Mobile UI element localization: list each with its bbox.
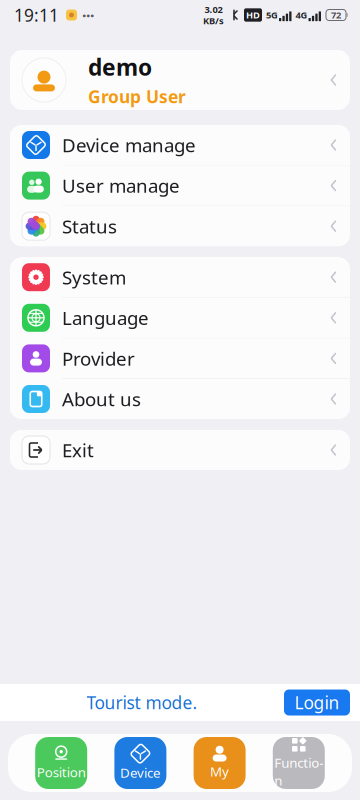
staticText: KB/s xyxy=(203,14,224,27)
staticText: 72 xyxy=(331,9,341,21)
staticText: 4G xyxy=(295,9,307,21)
staticText: About us xyxy=(62,387,141,411)
button[interactable]: Exit xyxy=(10,430,350,470)
staticText: Device manage xyxy=(62,133,196,157)
button[interactable]: Device manage xyxy=(10,125,350,165)
staticText: 3.02 xyxy=(204,3,222,15)
staticText: Device xyxy=(120,764,161,781)
button[interactable]: Device xyxy=(114,737,166,789)
staticText: User manage xyxy=(62,173,180,198)
staticText: Function xyxy=(274,754,323,789)
staticText: Tourist mode. xyxy=(86,691,197,714)
staticText: Status xyxy=(62,214,117,239)
button[interactable]: demo xyxy=(0,50,360,110)
staticText: Position xyxy=(37,763,86,781)
staticText: System xyxy=(62,265,126,290)
button[interactable]: Status xyxy=(10,206,350,246)
button[interactable]: Login xyxy=(284,689,350,715)
button[interactable]: Function xyxy=(273,737,325,789)
button[interactable]: About us xyxy=(10,379,350,419)
staticText: Login xyxy=(294,691,339,714)
staticText: My xyxy=(210,762,229,780)
staticText: Language xyxy=(62,305,149,330)
button[interactable]: Language xyxy=(10,298,350,338)
staticText: Group User xyxy=(88,85,186,108)
staticText: Exit xyxy=(62,438,94,462)
staticText: 19:11 xyxy=(14,3,59,26)
button[interactable]: Provider xyxy=(10,338,350,378)
staticText: demo xyxy=(88,52,152,82)
button[interactable]: User manage xyxy=(10,166,350,206)
staticText: 5G xyxy=(266,9,278,21)
staticText: Provider xyxy=(62,346,135,371)
button[interactable]: My xyxy=(194,737,246,789)
button[interactable]: System xyxy=(10,257,350,297)
button[interactable]: Position xyxy=(35,737,87,789)
staticText: ··· xyxy=(82,4,94,26)
staticText: HD xyxy=(246,9,260,21)
